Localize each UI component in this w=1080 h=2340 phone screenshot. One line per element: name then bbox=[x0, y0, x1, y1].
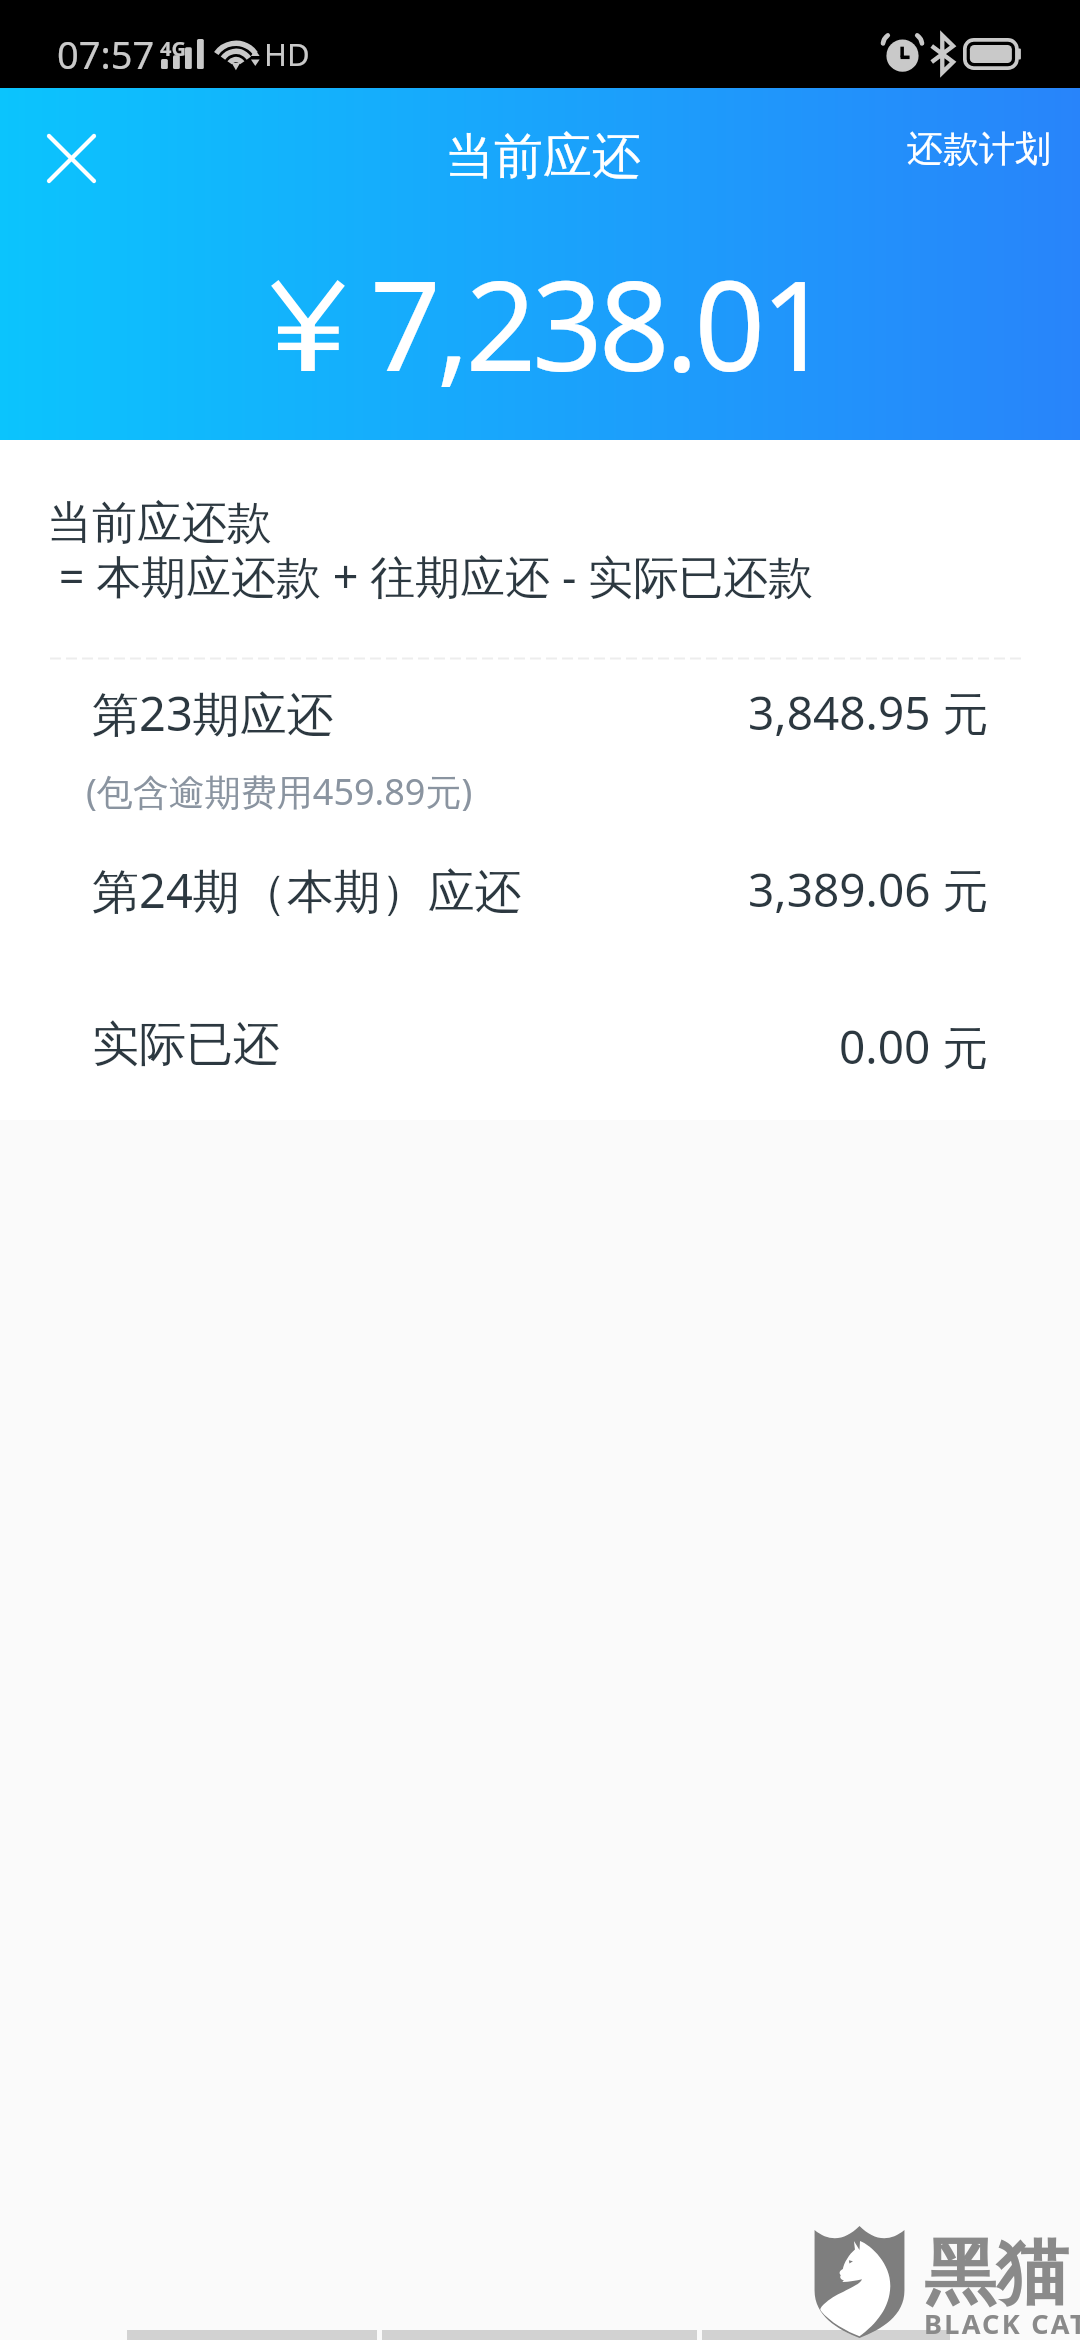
staticText: 0.00 元 bbox=[839, 1015, 989, 1078]
button[interactable]: 第24期（本期）应还 bbox=[0, 858, 1080, 922]
staticText: 还款计划 bbox=[907, 126, 1051, 171]
staticText: 第24期（本期）应还 bbox=[92, 858, 522, 922]
staticText: 实际已还 bbox=[92, 1015, 280, 1074]
staticText: 黑猫 bbox=[924, 2228, 1068, 2319]
staticText: 3,389.06 元 bbox=[748, 858, 989, 921]
staticText: 当前应还款 bbox=[47, 495, 272, 552]
button[interactable]: 实际已还 bbox=[0, 1015, 1080, 1078]
staticText: 4G bbox=[160, 35, 186, 62]
staticText: 7,238.01 bbox=[370, 238, 828, 407]
staticText: BLACK CAT bbox=[924, 2305, 1080, 2340]
staticText: (包含逾期费用459.89元) bbox=[86, 767, 473, 816]
staticText: 当前应还 bbox=[445, 126, 641, 188]
button[interactable]: Close bbox=[23, 110, 119, 206]
staticText: 3,848.95 元 bbox=[748, 681, 989, 744]
staticText: 第23期应还 bbox=[92, 681, 334, 745]
staticText: HD bbox=[264, 33, 310, 75]
button[interactable]: 第23期应还 bbox=[0, 681, 1080, 745]
button[interactable]: 还款计划 bbox=[889, 108, 1069, 189]
staticText: 07:57 bbox=[57, 28, 155, 80]
staticText: = 本期应还款 + 往期应还 - 实际已还款 bbox=[47, 545, 814, 606]
